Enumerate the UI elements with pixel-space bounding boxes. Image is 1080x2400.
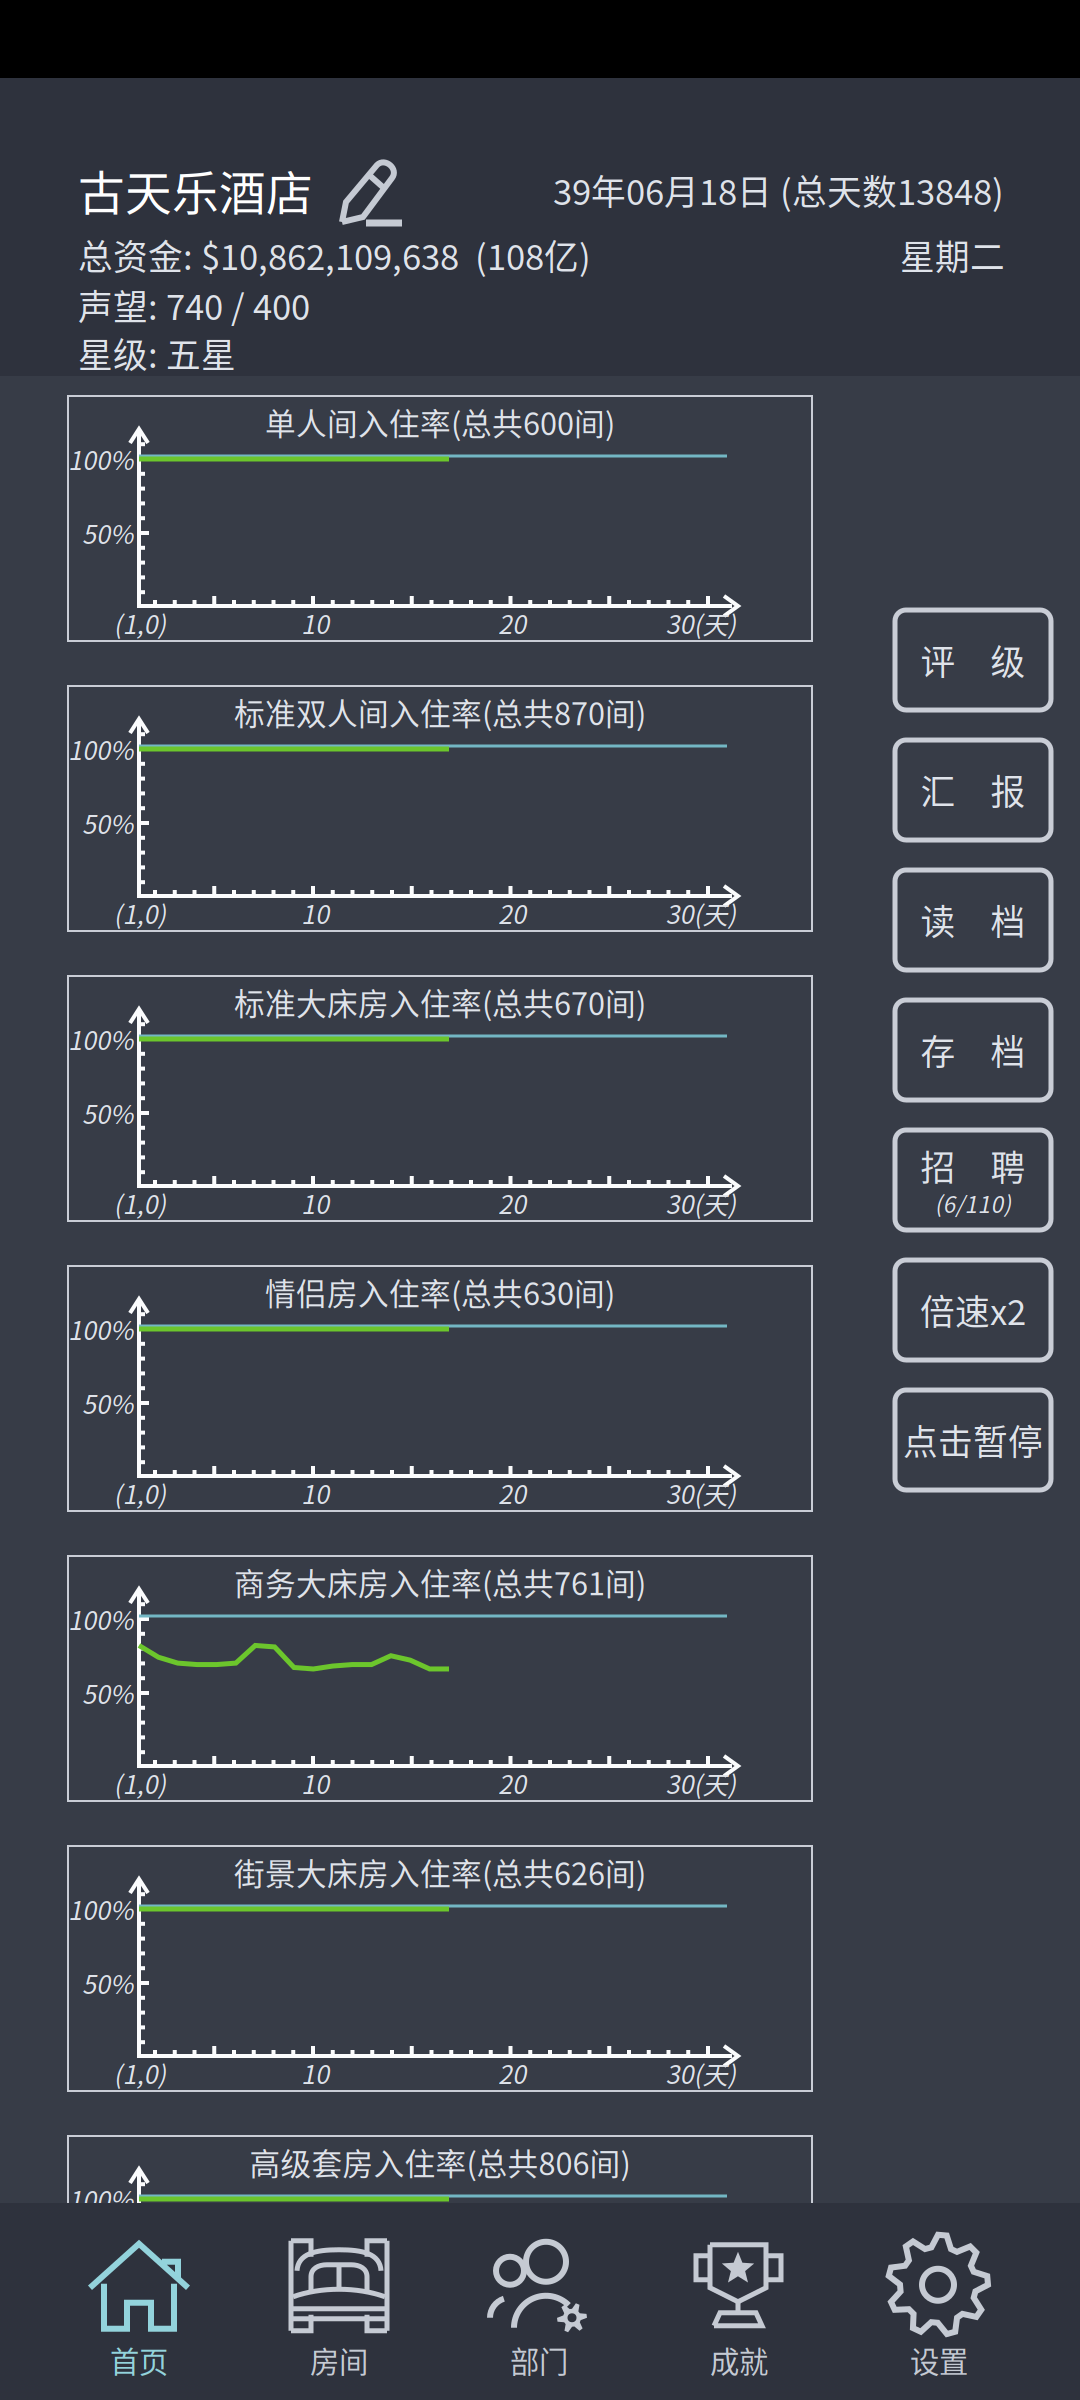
staticText: 30(天) — [665, 605, 736, 641]
staticText: 成就 — [710, 2339, 768, 2381]
staticText: 10 — [301, 895, 329, 931]
staticText: 古天乐酒店 — [78, 156, 313, 224]
staticText: 50% — [82, 515, 133, 551]
staticText: 30(天) — [665, 1185, 736, 1221]
staticText: 50% — [82, 1675, 133, 1711]
staticText: 20 — [498, 1185, 526, 1221]
staticText: 20 — [498, 2055, 526, 2091]
staticText: 30(天) — [665, 1475, 736, 1511]
staticText: 100% — [68, 731, 133, 767]
staticText: (1,0) — [113, 605, 166, 641]
staticText: 设置 — [910, 2339, 968, 2381]
staticText: 20 — [498, 2345, 526, 2381]
staticText: 评 级 — [920, 635, 1025, 685]
staticText: 50% — [82, 2255, 133, 2291]
staticText: 50% — [82, 1385, 133, 1421]
staticText: 点击暂停 — [903, 1415, 1043, 1465]
staticText: 街景大床房入住率(总共626间) — [234, 1850, 646, 1894]
staticText: 30(天) — [665, 895, 736, 931]
staticText: 星级: 五星 — [78, 328, 236, 378]
staticText: 标准大床房入住率(总共670间) — [234, 980, 646, 1024]
staticText: 100% — [68, 2181, 133, 2217]
staticText: 商务大床房入住率(总共761间) — [234, 1560, 646, 1604]
staticText: 10 — [301, 1765, 329, 1801]
staticText: 声望: 740 / 400 — [78, 280, 310, 330]
staticText: 倍速x2 — [920, 1285, 1026, 1335]
staticText: 高级套房入住率(总共806间) — [249, 2140, 630, 2184]
staticText: (1,0) — [113, 1765, 166, 1801]
staticText: 10 — [301, 605, 329, 641]
staticText: 50% — [82, 1095, 133, 1131]
button[interactable]: 存 档 — [895, 1000, 1051, 1100]
staticText: 20 — [498, 1765, 526, 1801]
button[interactable]: 房间 — [239, 2219, 439, 2399]
staticText: 部门 — [510, 2339, 568, 2381]
staticText: 50% — [82, 1965, 133, 2001]
button[interactable]: 点击暂停 — [895, 1390, 1051, 1490]
staticText: (1,0) — [113, 1475, 166, 1511]
staticText: 汇 报 — [920, 765, 1025, 815]
staticText: 读 档 — [920, 895, 1025, 945]
staticText: 30(天) — [665, 2055, 736, 2091]
staticText: 20 — [498, 895, 526, 931]
staticText: 50% — [82, 805, 133, 841]
button[interactable]: 倍速x2 — [895, 1260, 1051, 1360]
button[interactable]: 首页 — [39, 2219, 239, 2399]
staticText: 30(天) — [665, 1765, 736, 1801]
staticText: (1,0) — [113, 2055, 166, 2091]
staticText: 100% — [68, 1311, 133, 1347]
button[interactable]: 读 档 — [895, 870, 1051, 970]
button[interactable]: 评 级 — [895, 610, 1051, 710]
staticText: 100% — [68, 1601, 133, 1637]
button[interactable]: 设置 — [839, 2219, 1039, 2399]
staticText: 100% — [68, 1891, 133, 1927]
staticText: 情侣房入住率(总共630间) — [265, 1270, 615, 1314]
staticText: 20 — [498, 1475, 526, 1511]
button[interactable]: 部门 — [439, 2219, 639, 2399]
button[interactable]: 汇 报 — [895, 740, 1051, 840]
staticText: 招 聘 — [920, 1140, 1025, 1191]
staticText: 20 — [498, 605, 526, 641]
staticText: (1,0) — [113, 1185, 166, 1221]
staticText: (1,0) — [113, 895, 166, 931]
staticText: 100% — [68, 1021, 133, 1057]
staticText: 10 — [301, 1475, 329, 1511]
staticText: 10 — [301, 2055, 329, 2091]
staticText: 10 — [301, 1185, 329, 1221]
staticText: 房间 — [310, 2339, 368, 2381]
button[interactable]: 成就 — [639, 2219, 839, 2399]
staticText: 30(天) — [665, 2345, 736, 2381]
button[interactable]: 招 聘 — [895, 1130, 1051, 1230]
staticText: 首页 — [110, 2339, 168, 2381]
button[interactable]: 重命名酒店 — [338, 160, 404, 228]
staticText: 100% — [68, 441, 133, 477]
staticText: (6/110) — [934, 1187, 1011, 1219]
staticText: 单人间入住率(总共600间) — [265, 400, 615, 444]
staticText: 10 — [301, 2345, 329, 2381]
staticText: 总资金: $10,862,109,638 (108亿) — [78, 230, 591, 280]
staticText: 标准双人间入住率(总共870间) — [234, 690, 646, 734]
staticText: 39年06月18日 (总天数13848) — [553, 165, 1004, 215]
staticText: 星期二 — [900, 230, 1005, 280]
staticText: 存 档 — [920, 1025, 1025, 1075]
staticText: (1,0) — [113, 2345, 166, 2381]
